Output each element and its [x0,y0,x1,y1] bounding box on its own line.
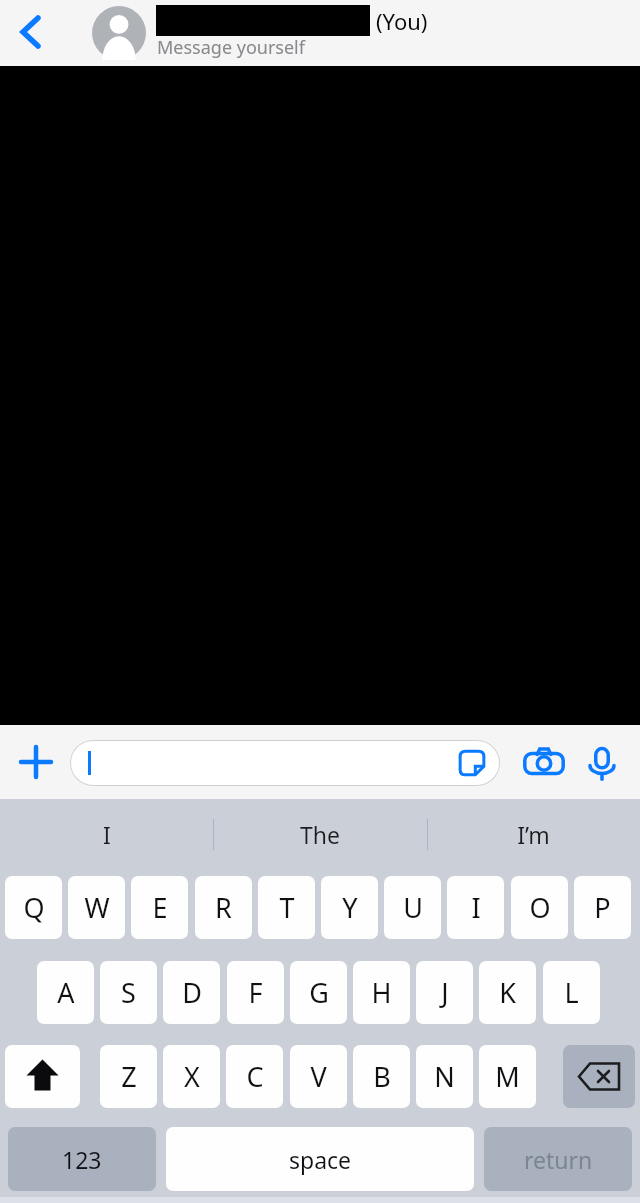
button[interactable]: N [416,1045,473,1108]
staticText: P [594,889,611,926]
button[interactable]: A [37,961,94,1024]
staticText: F [248,974,263,1011]
button[interactable]: Record audio [578,739,626,787]
staticText: A [57,974,75,1011]
staticText: E [152,889,168,926]
staticText: Q [23,889,45,926]
staticText: space [289,1144,352,1175]
staticText: U [403,889,423,926]
staticText: T [279,889,295,926]
button[interactable]: I [0,799,213,869]
staticText: B [373,1058,391,1095]
staticText: Y [342,889,358,926]
staticText: I [103,819,111,850]
button[interactable]: Backspace [563,1045,635,1108]
button[interactable]: S [100,961,157,1024]
staticText: M [495,1058,520,1095]
staticText: The [300,819,340,850]
staticText: (You) [376,6,428,36]
staticText: C [246,1058,264,1095]
button[interactable]: C [226,1045,283,1108]
staticText: K [499,974,516,1011]
button[interactable]: Add attachment [12,738,60,786]
button[interactable]: Q [5,876,62,939]
staticText: D [182,974,202,1011]
staticText: Message yourself [157,35,305,60]
staticText: S [121,974,136,1011]
staticText: L [564,974,579,1011]
button[interactable]: return [484,1127,632,1191]
staticText: Z [121,1058,137,1095]
button[interactable]: space [166,1127,474,1191]
staticText: X [184,1058,200,1095]
staticText: I’m [517,819,550,850]
button[interactable]: W [68,876,125,939]
button[interactable]: X [163,1045,220,1108]
button[interactable]: K [479,961,536,1024]
staticText: I [471,889,481,926]
staticText: V [310,1058,327,1095]
button[interactable]: Z [100,1045,157,1108]
button[interactable]: V [290,1045,347,1108]
button[interactable]: E [131,876,188,939]
staticText: W [84,889,110,926]
staticText: return [524,1144,593,1175]
button[interactable]: U [384,876,441,939]
button[interactable]: I’m [427,799,640,869]
button[interactable]: B [353,1045,410,1108]
button[interactable]: G [290,961,347,1024]
staticText: 123 [62,1144,102,1175]
button[interactable]: D [163,961,220,1024]
button[interactable] [70,740,500,786]
button[interactable]: M [479,1045,536,1108]
button[interactable]: Y [321,876,378,939]
button[interactable]: H [353,961,410,1024]
button[interactable]: R [195,876,252,939]
staticText: G [309,974,329,1011]
button[interactable]: J [416,961,473,1024]
staticText: J [441,974,449,1011]
button[interactable]: 123 [8,1127,156,1191]
button[interactable]: T [258,876,315,939]
staticText: R [215,889,232,926]
button[interactable]: Camera [520,739,568,787]
button[interactable]: F [227,961,284,1024]
button[interactable]: L [543,961,600,1024]
staticText: H [371,974,392,1011]
button[interactable]: P [574,876,631,939]
button[interactable]: O [511,876,568,939]
button[interactable]: I [447,876,504,939]
button[interactable]: Shift [5,1045,80,1108]
button[interactable]: The [213,799,426,869]
staticText: N [434,1058,455,1095]
staticText: O [529,889,551,926]
button[interactable]: Back [6,8,54,56]
